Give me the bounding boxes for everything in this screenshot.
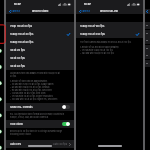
staticText: 4K at 30 fps [10, 57, 25, 60]
staticText: 4K at 24 fps [10, 49, 25, 52]
button[interactable]: 1080p HD at 240 fps [76, 30, 143, 38]
button[interactable]: 4K at 30 fps [6, 54, 74, 62]
staticText: 1080p HD at 60 fps [10, 41, 34, 44]
staticText: PAL is a television video format used in… [10, 113, 65, 119]
button[interactable]: Auto FPS [6, 140, 74, 148]
staticText: The front camera will always record slo-… [80, 41, 132, 43]
button[interactable]: 4K at 60 fps [6, 62, 74, 70]
button[interactable]: 4K at 24 fps [6, 46, 74, 54]
staticText: 4K at 60 fps [10, 65, 25, 68]
button[interactable]: Show PAL Formats [6, 103, 74, 111]
staticText: A minute of video will be approximately:… [10, 80, 58, 101]
staticText: Camera [81, 10, 90, 13]
button[interactable]: Camera [79, 8, 90, 14]
staticText: QuickTake video will always record with … [10, 72, 60, 78]
staticText: Record up to 4K fps video in 10-bit high… [10, 130, 63, 136]
button[interactable]: HDR Video [6, 120, 74, 128]
staticText: 10:37 [84, 3, 91, 6]
button[interactable]: Camera [9, 8, 20, 14]
staticText: Camera [11, 10, 20, 13]
staticText: Show PAL Formats [10, 106, 33, 109]
button[interactable]: 1080p HD at 60 fps [6, 38, 74, 46]
staticText: HDR Video [10, 123, 24, 126]
staticText: Record Slo-mo [100, 10, 119, 13]
staticText: 720p HD at 30 fps [10, 25, 33, 28]
staticText: Auto FPS [10, 143, 22, 146]
staticText: 1080p HD at 30 fps [10, 33, 34, 36]
staticText: 1080p HD at 240 fps [80, 33, 105, 36]
staticText: Auto 30 fps [53, 143, 68, 146]
button[interactable]: 1080p HD at 30 fps [6, 30, 74, 38]
staticText: 10:37 [14, 3, 21, 6]
button[interactable]: 1080p HD at 120 fps [76, 22, 143, 30]
staticText: 1080p HD at 120 fps [80, 25, 105, 28]
staticText: A minute of slo-mo will be approximately… [80, 46, 120, 55]
staticText: Record Video [32, 10, 49, 13]
button[interactable]: 720p HD at 30 fps [6, 22, 74, 30]
